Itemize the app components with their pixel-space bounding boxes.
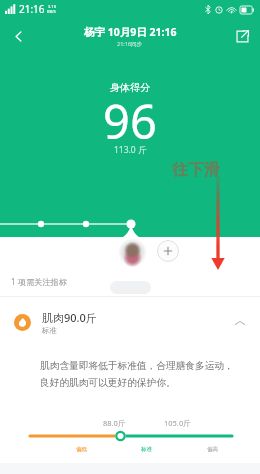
staticText: 良好的肌肉可以更好的保护你。 xyxy=(40,377,176,389)
staticText: 96 xyxy=(103,89,157,153)
staticText: 肌肉90.0斤 xyxy=(42,310,97,325)
staticText: 身体得分 xyxy=(110,81,150,94)
button[interactable]: Back xyxy=(0,18,36,54)
button[interactable]: Add xyxy=(157,240,179,262)
staticText: 偏高 xyxy=(207,446,218,453)
staticText: 肌肉含量即将低于标准值，合理膳食多运动， xyxy=(40,360,234,372)
staticText: 往下滑 xyxy=(172,160,220,180)
staticText: 105.0斤 xyxy=(164,418,191,428)
staticText: KB/S xyxy=(47,9,56,14)
staticText: 113.0 斤 xyxy=(114,144,147,156)
staticText: 标准 xyxy=(141,446,152,453)
button[interactable]: 肌肉90.0斤 xyxy=(0,297,260,348)
button[interactable]: Profile photo xyxy=(118,238,147,267)
staticText: 标准 xyxy=(42,326,57,335)
staticText: 杨宇 10月9日 21:16 xyxy=(84,25,177,39)
button[interactable]: Share xyxy=(224,18,260,54)
staticText: 3.10 xyxy=(48,4,56,9)
staticText: 偏低 xyxy=(76,446,87,453)
staticText: 1 项需关注指标 xyxy=(11,276,67,287)
staticText: 88.0斤 xyxy=(103,418,126,428)
staticText: 21:16 xyxy=(19,2,45,16)
staticText: 21:16同步 xyxy=(117,40,143,48)
